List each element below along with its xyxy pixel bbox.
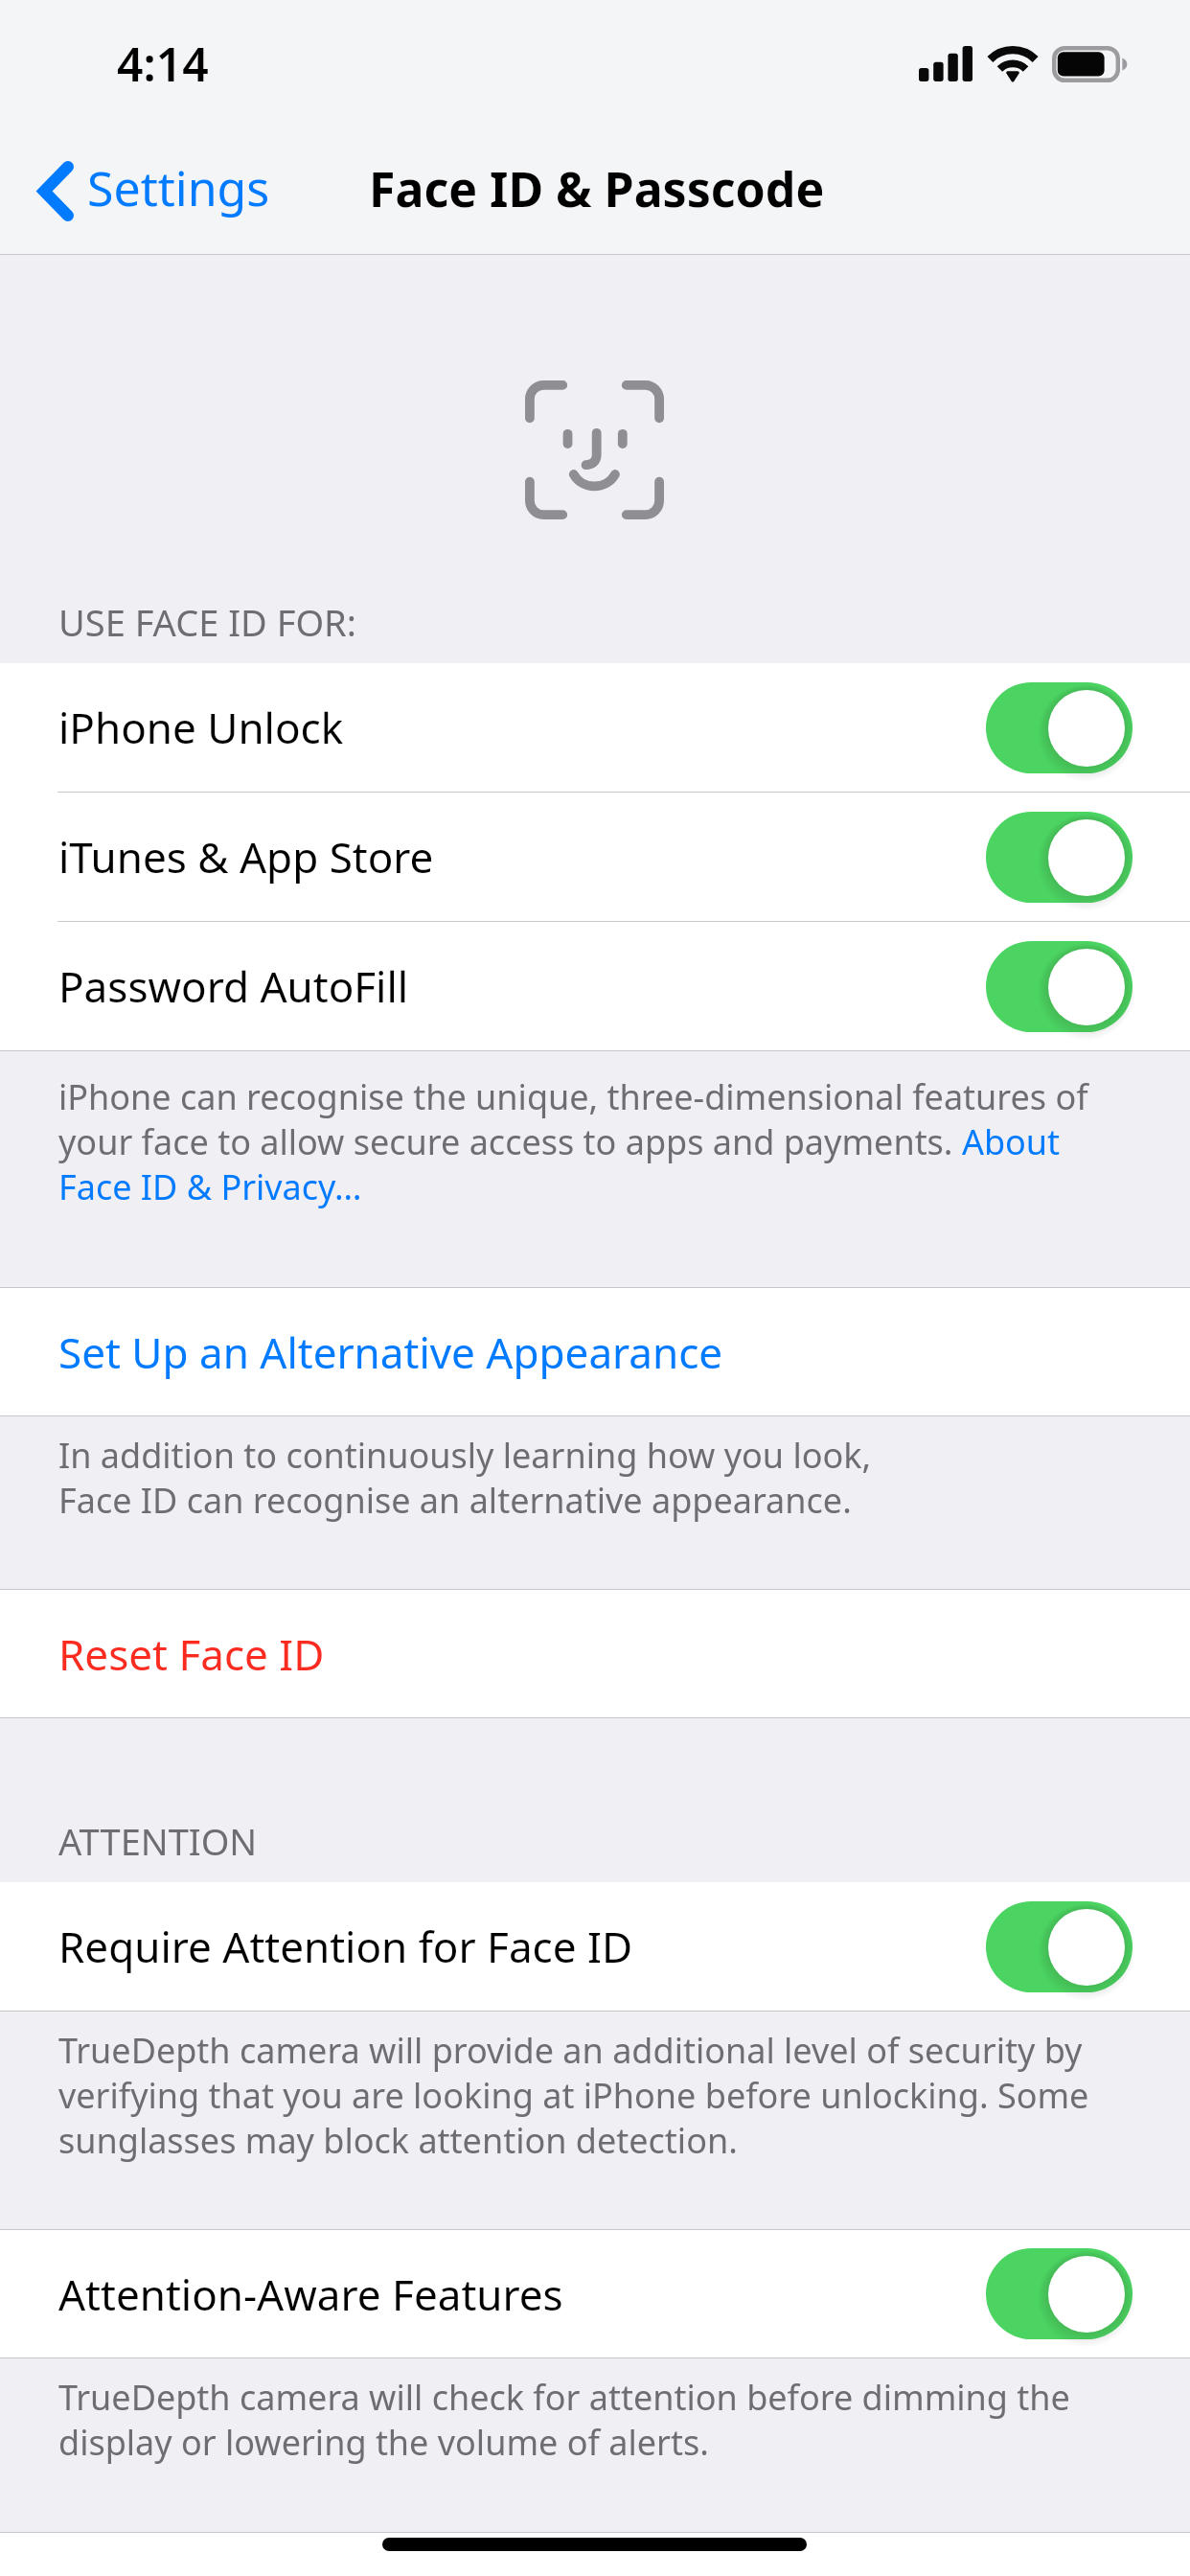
staticText: iPhone can recognise the unique, three-d… <box>58 1074 1112 1209</box>
button[interactable]: Require Attention for Face ID <box>0 1882 1190 2011</box>
button[interactable]: Settings <box>25 145 278 237</box>
button[interactable]: iTunes & App Store <box>0 793 1190 921</box>
staticText: In addition to continuously learning how… <box>58 1433 1112 1523</box>
staticText: iTunes & App Store <box>58 828 434 885</box>
button[interactable]: iPhone Unlock <box>0 663 1190 792</box>
button[interactable]: iTunes & App Store, on <box>986 812 1133 903</box>
button[interactable]: Set Up an Alternative Appearance <box>0 1288 1190 1415</box>
staticText: Password AutoFill <box>58 957 409 1015</box>
button[interactable]: Attention-Aware Features, on <box>986 2248 1133 2339</box>
button[interactable]: iPhone Unlock, on <box>986 682 1133 773</box>
staticText: iPhone Unlock <box>58 699 344 756</box>
button[interactable]: Password AutoFill, on <box>986 941 1133 1032</box>
staticText: TrueDepth camera will check for attentio… <box>58 2375 1112 2465</box>
button[interactable]: Reset Face ID <box>0 1590 1190 1717</box>
staticText: Reset Face ID <box>58 1625 325 1683</box>
staticText: Settings <box>87 155 270 220</box>
staticText: ATTENTION <box>58 1816 258 1866</box>
staticText: Require Attention for Face ID <box>58 1918 633 1975</box>
button[interactable]: Require Attention for Face ID, on <box>986 1901 1133 1992</box>
staticText: Face ID & Passcode <box>369 156 825 221</box>
staticText: Attention-Aware Features <box>58 2265 563 2323</box>
button[interactable]: Attention-Aware Features <box>0 2230 1190 2357</box>
staticText: 4:14 <box>117 33 209 95</box>
staticText: USE FACE ID FOR: <box>58 597 356 647</box>
button[interactable]: Password AutoFill <box>0 922 1190 1050</box>
staticText: Set Up an Alternative Appearance <box>58 1323 723 1381</box>
staticText: TrueDepth camera will provide an additio… <box>58 2028 1112 2163</box>
